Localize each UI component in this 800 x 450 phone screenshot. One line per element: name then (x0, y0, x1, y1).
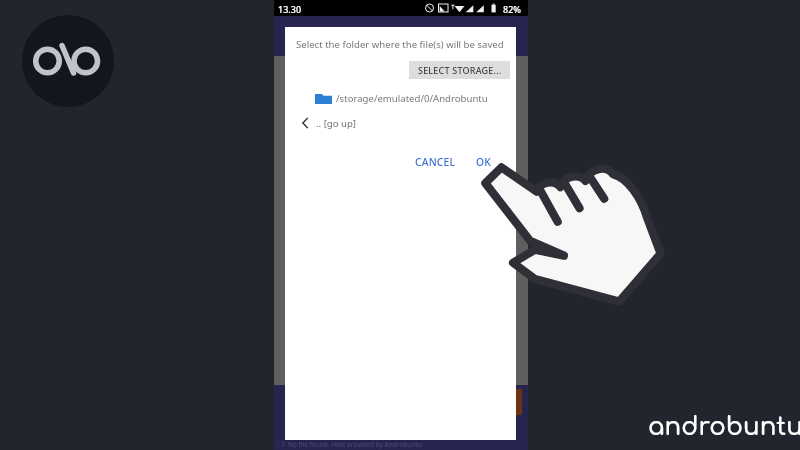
staticText: CANCEL (415, 155, 456, 169)
staticText: No file found. Host provided by Androbun… (288, 440, 422, 449)
button[interactable]: OK (476, 152, 491, 172)
staticText: .. [go up] (316, 117, 356, 130)
button[interactable]: .. [go up] (285, 112, 516, 134)
staticText: /storage/emulated/0/Androbuntu (336, 92, 488, 105)
button[interactable]: Androbuntu logo (22, 15, 114, 107)
staticText: OK (476, 155, 491, 169)
staticText: SELECT STORAGE... (418, 64, 502, 76)
staticText: Select the folder where the file(s) will… (296, 38, 504, 51)
button[interactable]: /storage/emulated/0/Androbuntu (285, 87, 516, 109)
staticText: androbuntu (648, 413, 800, 440)
button[interactable]: CANCEL (415, 152, 456, 172)
button[interactable]: androbuntu (648, 413, 800, 440)
staticText: 13.30 (278, 3, 302, 15)
staticText: 82% (503, 3, 521, 15)
staticText: 1 2 (276, 439, 286, 448)
button[interactable]: SELECT STORAGE... (409, 61, 510, 79)
